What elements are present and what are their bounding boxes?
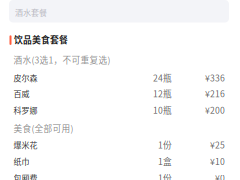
staticText: ¥0: [215, 171, 225, 180]
staticText: 1份: [158, 138, 172, 151]
staticText: ¥10: [210, 155, 225, 167]
staticText: 包厢费: [13, 172, 37, 180]
staticText: 酒水套餐: [15, 6, 47, 18]
staticText: 纸巾: [13, 155, 29, 167]
button[interactable]: 纸巾: [0, 155, 240, 171]
staticText: 酒水(3选1，不可重复选): [13, 53, 110, 66]
staticText: 12瓶: [153, 87, 172, 100]
staticText: ¥200: [205, 104, 225, 116]
staticText: ¥336: [205, 71, 225, 84]
staticText: 百威: [13, 88, 29, 99]
staticText: 科罗娜: [13, 104, 37, 116]
staticText: 爆米花: [13, 139, 37, 151]
staticText: ¥216: [205, 87, 225, 100]
staticText: 1份: [158, 171, 172, 180]
staticText: 24瓶: [153, 71, 172, 84]
staticText: 皮尔森: [13, 72, 37, 84]
button[interactable]: 皮尔森: [0, 71, 240, 87]
button[interactable]: 爆米花: [0, 138, 240, 155]
button[interactable]: 百威: [0, 87, 240, 104]
button[interactable]: 包厢费: [0, 171, 240, 180]
staticText: 10瓶: [153, 104, 172, 116]
staticText: 饮品美食套餐: [14, 33, 68, 46]
staticText: 美食(全部可用): [13, 122, 73, 134]
staticText: ¥25: [210, 138, 225, 151]
button[interactable]: 科罗娜: [0, 104, 240, 122]
staticText: 1盒: [158, 155, 172, 167]
